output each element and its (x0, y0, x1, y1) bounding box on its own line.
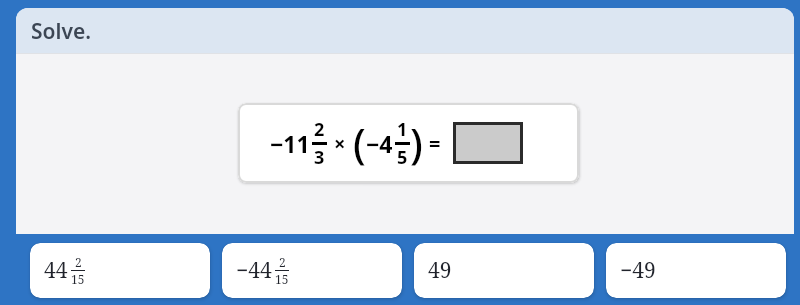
button[interactable]: −49 (606, 243, 786, 298)
staticText: 5 (397, 145, 408, 170)
staticText: 2 (75, 254, 82, 270)
staticText: × (334, 130, 346, 157)
staticText: ( (353, 115, 366, 171)
staticText: = (429, 130, 441, 157)
button[interactable]: 44 (30, 243, 210, 298)
staticText: −11 (270, 128, 310, 159)
button[interactable]: 49 (414, 243, 594, 298)
staticText: −49 (620, 256, 656, 285)
staticText: Solve. (31, 17, 92, 46)
staticText: −4 (366, 128, 393, 159)
staticText: 15 (275, 271, 289, 287)
staticText: 2 (314, 117, 325, 142)
staticText: 15 (71, 271, 85, 287)
button[interactable]: −44 (222, 243, 402, 298)
staticText: 1 (397, 117, 408, 142)
staticText: 3 (314, 145, 325, 170)
button[interactable] (453, 122, 523, 164)
staticText: ) (410, 115, 423, 171)
staticText: 2 (279, 254, 286, 270)
staticText: −44 (236, 256, 272, 285)
staticText: 44 (44, 256, 68, 285)
staticText: 49 (428, 256, 452, 285)
